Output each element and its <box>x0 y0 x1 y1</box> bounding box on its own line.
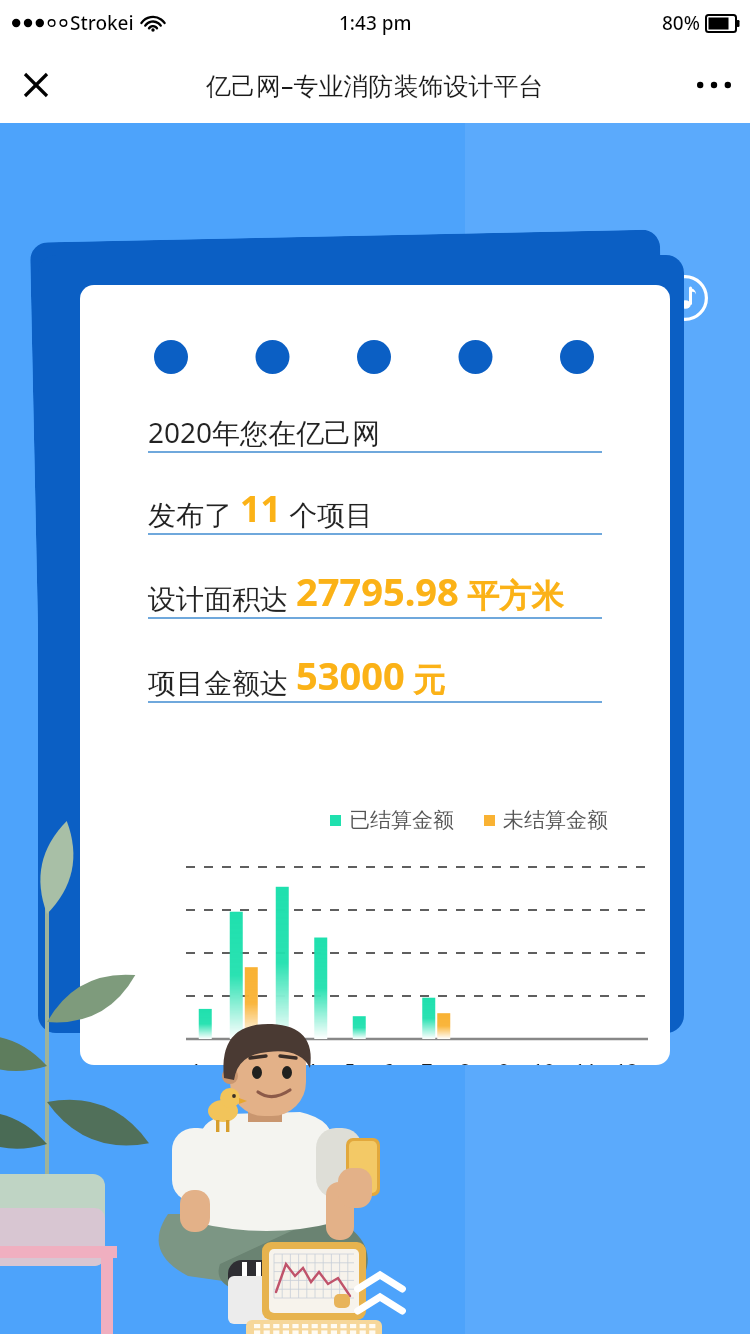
staticText: 7 <box>421 1057 433 1065</box>
staticText: 元 <box>405 657 446 701</box>
staticText: 亿己网–专业消防装饰设计平台 <box>206 68 544 102</box>
staticText: 11 <box>574 1057 597 1065</box>
staticText: 已结算金额 <box>349 807 454 833</box>
staticText: 设计面积达 <box>148 579 296 617</box>
staticText: 8 <box>459 1057 471 1065</box>
staticText: 53000 <box>296 649 405 701</box>
button[interactable]: Scroll up <box>345 1265 415 1327</box>
staticText: 个项目 <box>282 495 374 533</box>
staticText: 10 <box>532 1057 555 1065</box>
staticText: 平方米 <box>459 573 564 617</box>
staticText: 11 <box>240 484 282 533</box>
staticText: 1:43 pm <box>339 10 412 36</box>
button[interactable]: Close <box>8 57 64 113</box>
staticText: 4 <box>305 1057 317 1065</box>
button[interactable]: Music <box>654 267 716 329</box>
staticText: 项目金额达 <box>148 663 296 701</box>
staticText: 2020年您在亿己网 <box>148 413 381 451</box>
staticText: 80% <box>662 10 700 36</box>
staticText: Strokei <box>70 10 134 36</box>
staticText: 9 <box>498 1057 510 1065</box>
button[interactable]: More options <box>686 57 742 113</box>
staticText: 未结算金额 <box>503 807 608 833</box>
staticText: 27795.98 <box>296 565 459 617</box>
staticText: 6 <box>382 1057 394 1065</box>
staticText: 1 <box>190 1057 202 1065</box>
staticText: 12 <box>615 1057 638 1065</box>
staticText: 5 <box>344 1057 356 1065</box>
staticText: 发布了 <box>148 495 240 533</box>
